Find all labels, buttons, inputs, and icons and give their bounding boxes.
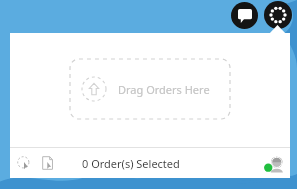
button[interactable]: Messages <box>231 2 258 29</box>
button[interactable]: Drag Orders Here <box>70 59 230 119</box>
staticText: Drag Orders Here <box>118 82 210 97</box>
staticText: 0 Order(s) Selected <box>82 156 180 171</box>
button[interactable]: Driver availability <box>263 152 285 174</box>
button[interactable]: Documents <box>38 153 58 173</box>
button[interactable]: Loading <box>264 1 292 29</box>
button[interactable]: Lasso select <box>14 153 34 173</box>
